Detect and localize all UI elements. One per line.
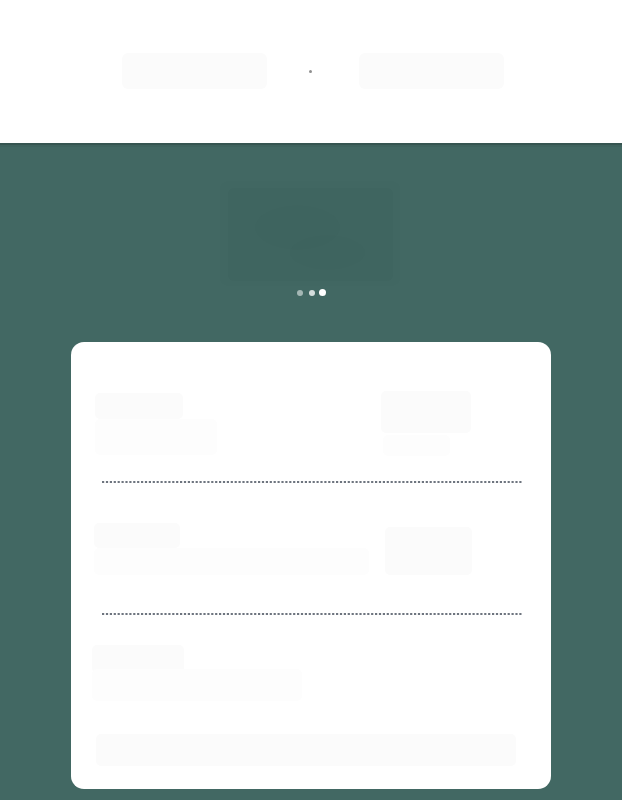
button[interactable] [71, 342, 551, 789]
